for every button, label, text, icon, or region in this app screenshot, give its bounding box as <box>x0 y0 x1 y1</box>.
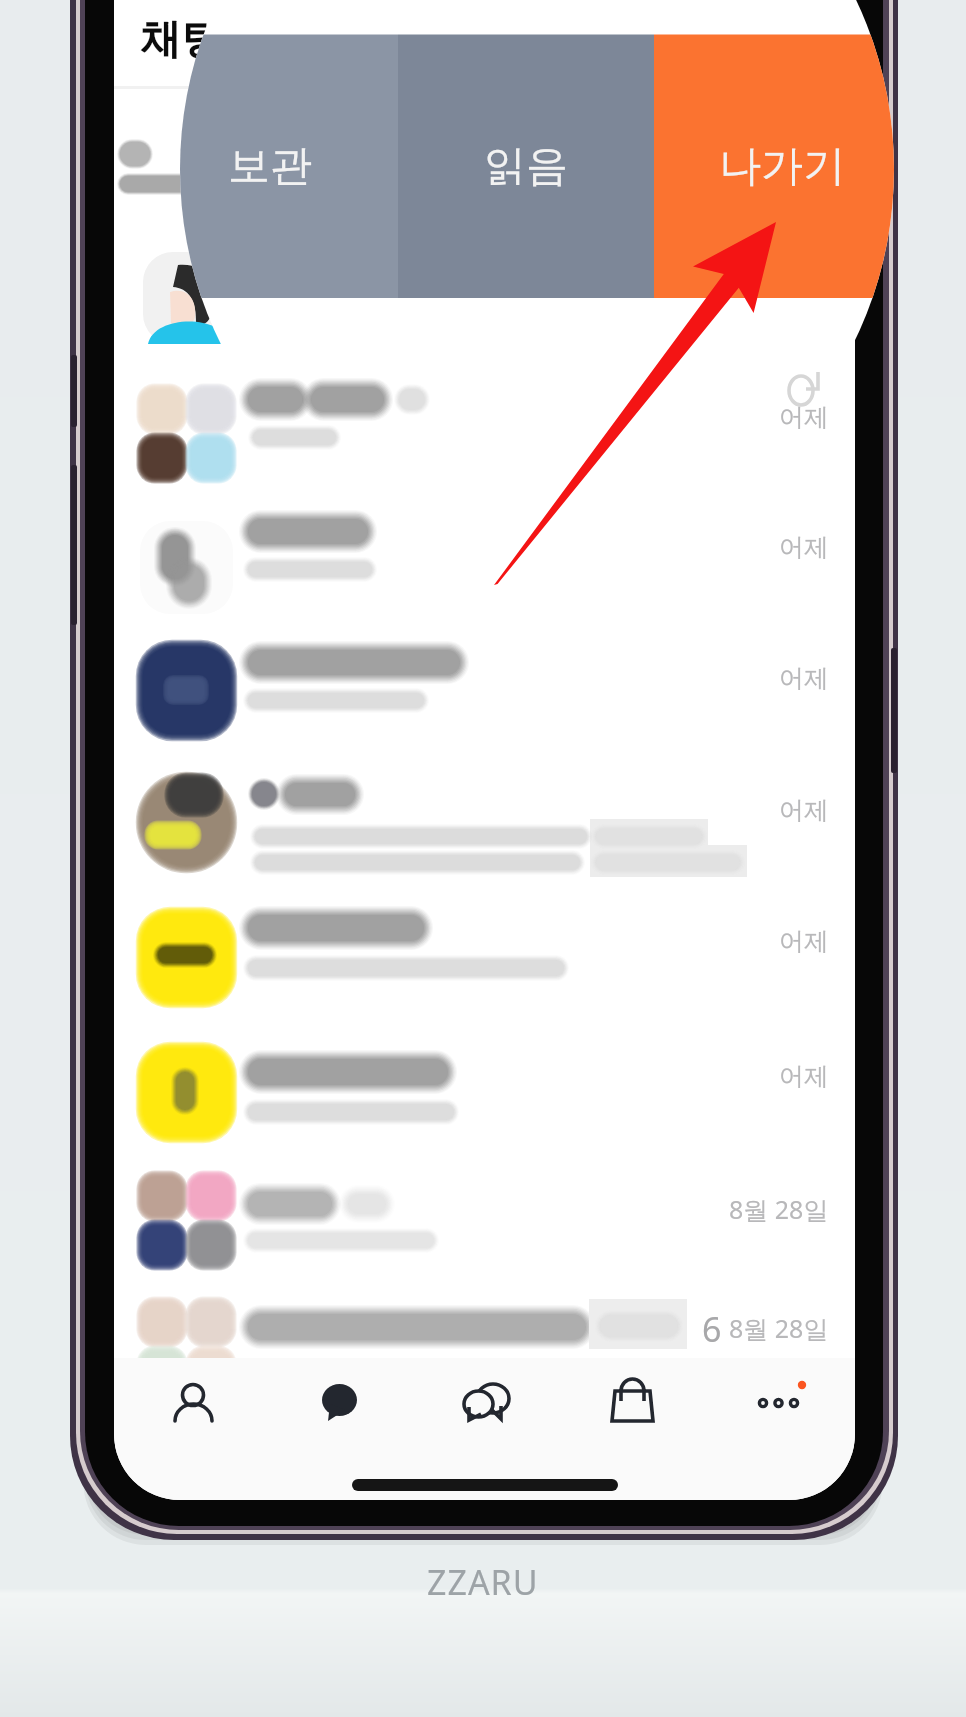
staticText: 6 <box>702 1306 722 1350</box>
button[interactable]: Chat room <box>114 368 855 492</box>
button[interactable]: Chat room <box>114 896 855 1020</box>
staticText: 어제 <box>779 663 829 694</box>
staticText: 보관 <box>228 140 312 193</box>
button[interactable]: Chats <box>263 1348 412 1468</box>
button[interactable]: Open chats <box>412 1348 561 1468</box>
button[interactable]: Chat room <box>114 1173 855 1297</box>
staticText: 어제 <box>779 402 829 433</box>
button[interactable]: Chat room <box>114 631 855 755</box>
staticText: 어제 <box>779 926 829 957</box>
staticText: 8월 28일 <box>729 1192 829 1226</box>
staticText: ZZARU <box>427 1559 539 1605</box>
button[interactable]: Chat room <box>114 1040 855 1164</box>
button[interactable]: More <box>710 1348 855 1468</box>
staticText: 어제 <box>779 532 829 563</box>
staticText: 어제 <box>779 795 829 826</box>
staticText: 8월 28일 <box>729 1311 829 1345</box>
staticText: 읽음 <box>484 140 568 193</box>
staticText: 나가기 <box>719 140 845 193</box>
button[interactable]: 나가기 <box>654 34 910 298</box>
button[interactable]: Chat room <box>114 500 855 624</box>
button[interactable]: 보관 <box>142 34 398 298</box>
button[interactable]: Chat room <box>114 763 855 887</box>
staticText: 어제 <box>779 1061 829 1092</box>
staticText: 채팅 <box>140 14 222 66</box>
button[interactable]: Shopping <box>561 1348 710 1468</box>
button[interactable]: Friends <box>114 1348 263 1468</box>
button[interactable]: Chat room <box>114 1295 855 1419</box>
button[interactable]: 읽음 <box>398 34 654 298</box>
